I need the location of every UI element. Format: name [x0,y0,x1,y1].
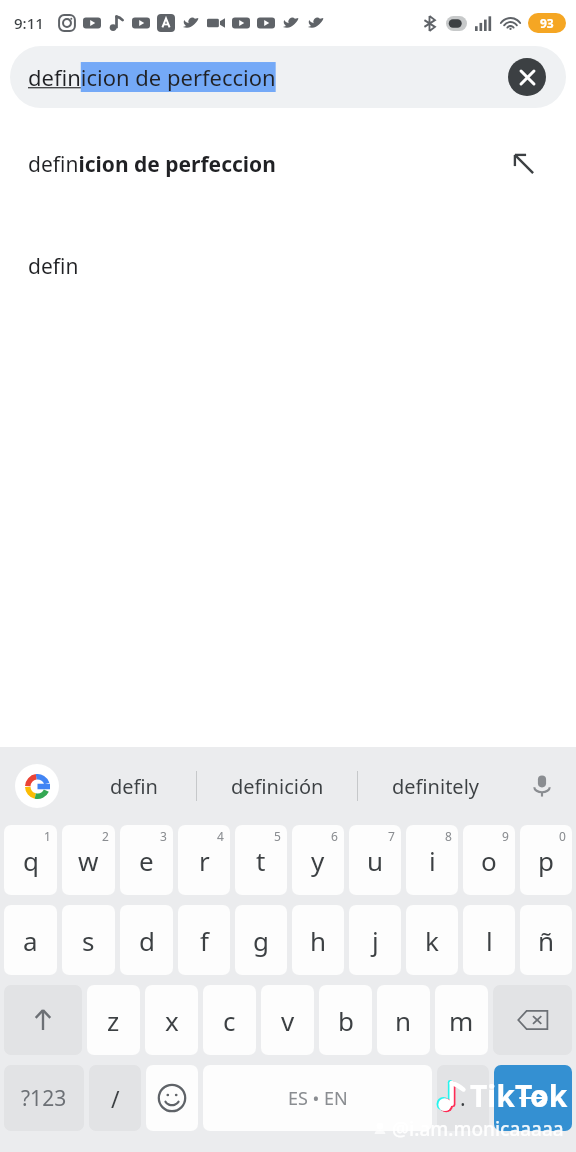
button[interactable]: definitely [358,747,512,825]
staticText: ñ [538,923,555,958]
staticText: definicion de perfeccion [28,150,502,179]
button[interactable]: Backspace [493,985,572,1055]
staticText: j [372,923,379,958]
staticText: 9:11 [14,13,44,33]
button[interactable]: n [377,985,430,1055]
staticText: w [78,843,99,878]
button[interactable]: Insert suggestion [502,142,546,186]
staticText: q [23,843,39,878]
button[interactable]: i [406,825,458,895]
button[interactable]: g [235,905,287,975]
button[interactable]: defin [0,240,576,292]
staticText: 0 [559,828,566,844]
staticText: ?123 [21,1084,67,1113]
button[interactable]: ?123 [4,1065,84,1131]
button[interactable]: c [203,985,256,1055]
staticText: / [111,1083,120,1114]
staticText: v [281,1003,295,1038]
button[interactable]: Voice input [520,764,564,808]
button[interactable]: o [463,825,515,895]
staticText: y [311,843,325,878]
button[interactable]: y [292,825,344,895]
button[interactable]: defin [72,747,196,825]
button[interactable]: h [292,905,344,975]
button[interactable]: Search [494,1065,572,1131]
staticText: 9 [502,828,509,844]
button[interactable]: Shift [4,985,82,1055]
staticText: definitely [392,773,479,800]
button[interactable]: d [120,905,173,975]
button[interactable]: Clear search [508,58,546,96]
staticText: 6 [331,828,338,844]
staticText: 1 [44,828,51,844]
staticText: l [486,923,493,958]
staticText: b [338,1003,354,1038]
button[interactable]: j [349,905,401,975]
staticText: n [395,1003,412,1038]
staticText: . [460,1084,466,1113]
staticText: r [199,843,210,878]
button[interactable]: ñ [520,905,572,975]
button[interactable]: Emoji [146,1065,198,1131]
staticText: f [200,923,209,958]
button[interactable]: t [235,825,287,895]
button[interactable]: ES • EN [203,1065,432,1131]
staticText: h [310,923,327,958]
staticText: definición [231,773,324,800]
staticText: defin [28,252,79,281]
button[interactable]: f [178,905,230,975]
staticText: 7 [388,828,395,844]
staticText: e [139,843,154,878]
button[interactable]: v [261,985,314,1055]
button[interactable]: m [435,985,488,1055]
button[interactable]: z [87,985,140,1055]
button[interactable]: q [4,825,57,895]
staticText: a [23,923,38,958]
staticText: 4 [217,828,224,844]
staticText: 2 [102,828,109,844]
staticText: p [538,843,554,878]
staticText: defin [110,773,158,800]
staticText: 93 [540,15,554,31]
button[interactable]: b [319,985,372,1055]
button[interactable]: . [437,1065,489,1131]
button[interactable]: u [349,825,401,895]
staticText: t [256,843,266,878]
staticText: s [82,923,95,958]
staticText: z [107,1003,120,1038]
button[interactable]: s [62,905,115,975]
staticText: k [425,923,439,958]
staticText: definicion de perfeccion [28,62,276,92]
button[interactable]: w [62,825,115,895]
staticText: ES • EN [288,1086,348,1111]
staticText: TikTok [470,1075,568,1116]
staticText: u [367,843,384,878]
button[interactable]: definicion de perfeccion [10,46,566,108]
button[interactable]: e [120,825,173,895]
staticText: @i.am.monicaaaaa [392,1116,564,1142]
staticText: x [165,1003,179,1038]
button[interactable]: / [89,1065,141,1131]
staticText: o [481,843,497,878]
staticText: g [253,923,269,958]
button[interactable]: x [145,985,198,1055]
button[interactable]: definición [197,747,357,825]
staticText: m [449,1003,474,1038]
button[interactable]: p [520,825,572,895]
button[interactable]: k [406,905,458,975]
staticText: d [139,923,155,958]
button[interactable]: r [178,825,230,895]
staticText: 8 [445,828,452,844]
staticText: 5 [274,828,281,844]
button[interactable]: a [4,905,57,975]
staticText: 3 [160,828,167,844]
button[interactable]: l [463,905,515,975]
button[interactable]: definicion de perfeccion [0,136,576,192]
button[interactable]: Google [15,764,59,808]
staticText: i [429,843,436,878]
staticText: c [223,1003,236,1038]
